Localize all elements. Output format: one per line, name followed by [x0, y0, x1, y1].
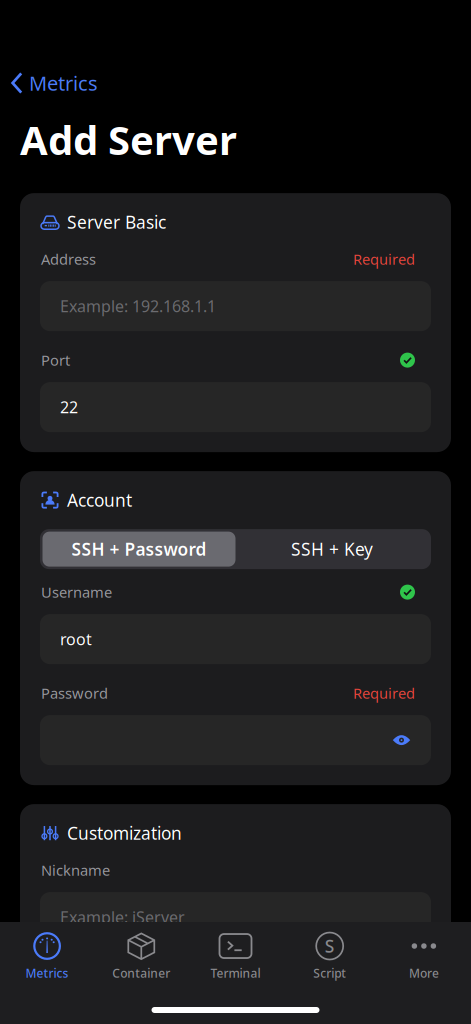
- staticText: More: [409, 965, 439, 981]
- staticText: Address: [41, 249, 96, 269]
- button[interactable]: Metrics: [0, 924, 94, 981]
- button[interactable]: Container: [94, 924, 188, 981]
- staticText: 22: [60, 396, 78, 418]
- staticText: Container: [112, 965, 170, 981]
- staticText: Terminal: [210, 965, 260, 981]
- staticText: SSH + Password: [71, 538, 206, 561]
- button[interactable]: Terminal: [188, 924, 283, 981]
- staticText: Metrics: [26, 965, 69, 981]
- staticText: S: [325, 934, 335, 957]
- staticText: Example: iServer: [60, 906, 185, 928]
- staticText: Username: [41, 582, 112, 602]
- button[interactable]: More: [377, 924, 471, 981]
- staticText: Password: [41, 683, 108, 703]
- button[interactable]: SSH + Password: [42, 532, 235, 567]
- staticText: Nickname: [41, 860, 110, 880]
- staticText: root: [60, 628, 92, 650]
- staticText: Account: [67, 489, 132, 512]
- button[interactable]: Metrics: [0, 66, 110, 100]
- staticText: Required: [353, 249, 415, 269]
- staticText: Metrics: [29, 70, 98, 96]
- staticText: SSH + Key: [291, 538, 373, 561]
- staticText: Script: [313, 965, 346, 981]
- button[interactable]: S: [283, 924, 377, 981]
- staticText: Port: [41, 350, 70, 370]
- staticText: Customization: [67, 822, 182, 845]
- staticText: Required: [353, 683, 415, 703]
- button[interactable]: Show password: [392, 734, 411, 747]
- staticText: Example: 192.168.1.1: [60, 295, 216, 317]
- button[interactable]: SSH + Key: [235, 532, 428, 567]
- staticText: Add Server: [20, 113, 237, 166]
- staticText: Server Basic: [67, 211, 166, 234]
